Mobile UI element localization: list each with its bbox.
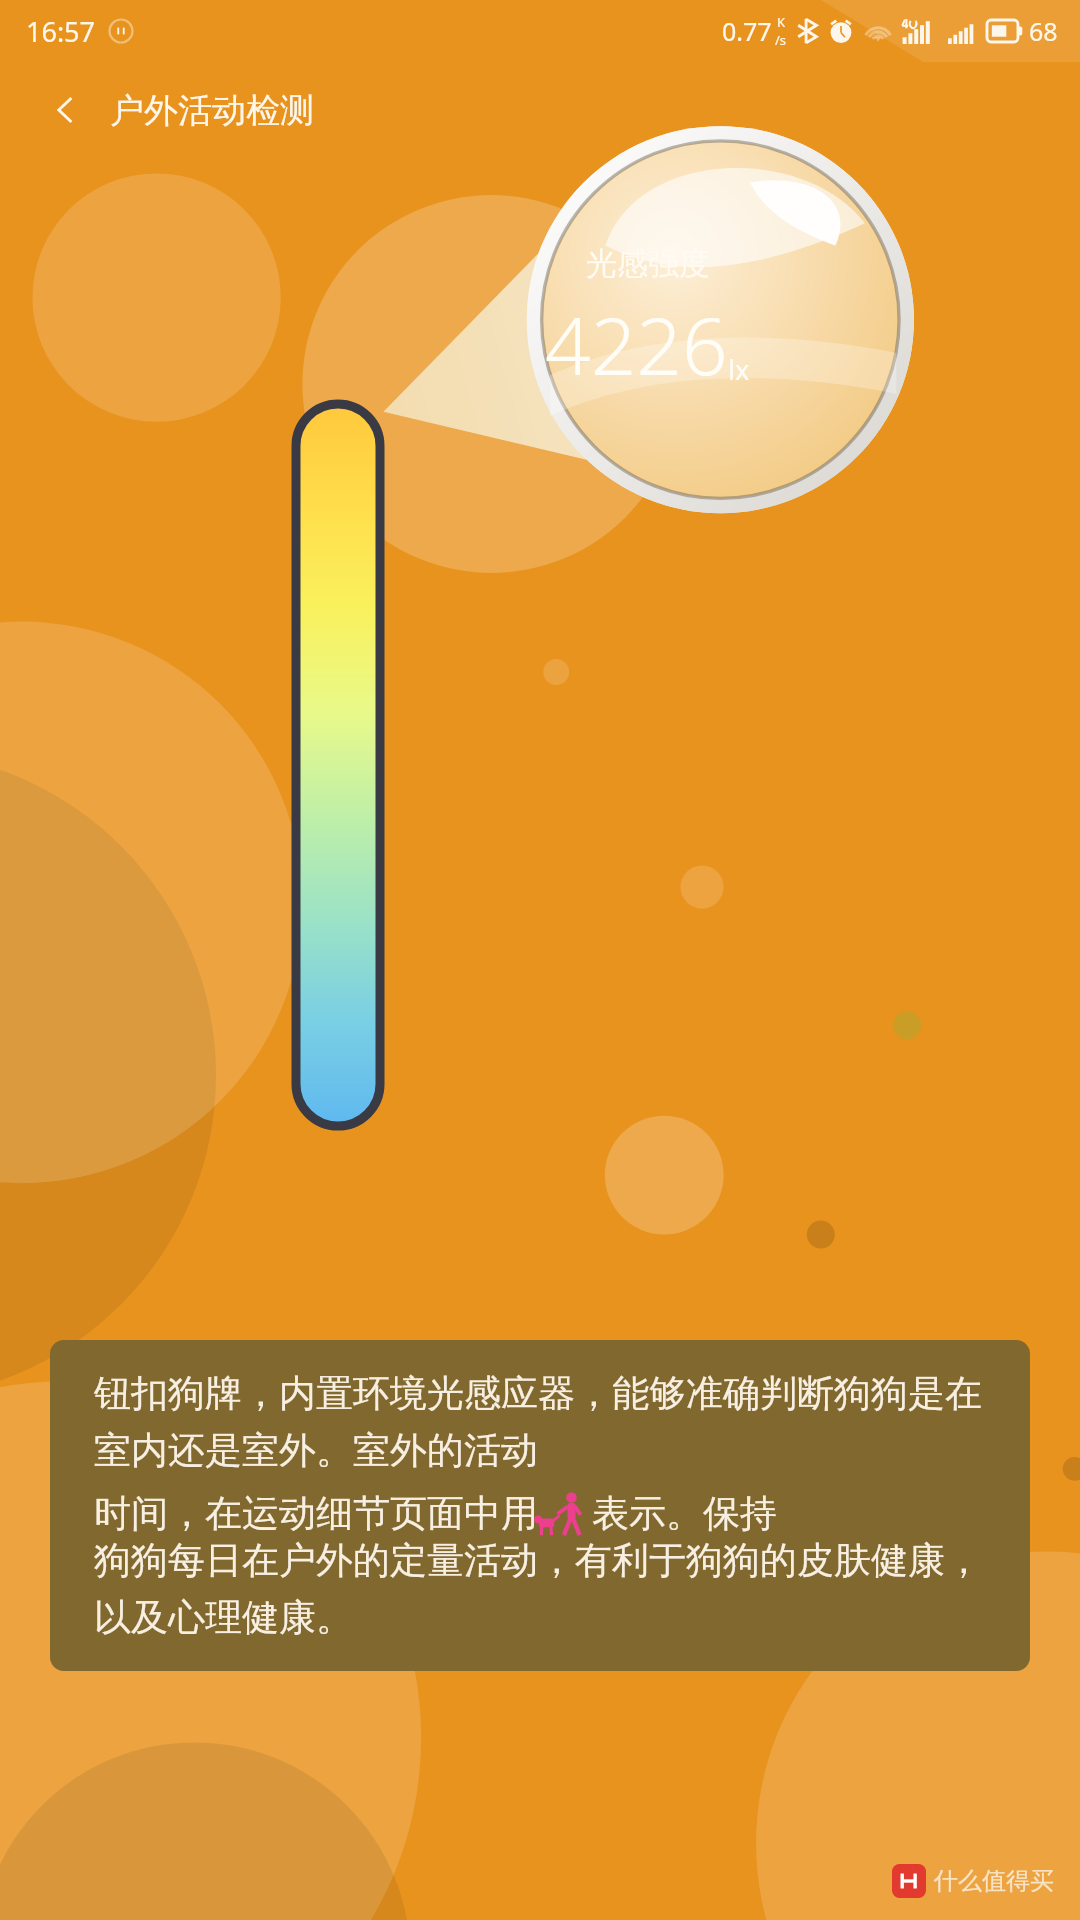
staticText: 68: [1029, 14, 1058, 48]
button[interactable]: [296, 404, 380, 1126]
staticText: 钮扣狗牌，内置环境光感应器，能够准确判断狗狗是在室内还是室外。室外的活动: [94, 1370, 986, 1474]
button[interactable]: 钮扣狗牌，内置环境光感应器，能够准确判断狗狗是在室内还是室外。室外的活动: [50, 1340, 1030, 1671]
button[interactable]: Back: [34, 78, 98, 142]
staticText: 16:57: [26, 13, 96, 50]
staticText: K: [777, 13, 786, 31]
staticText: 户外活动检测: [110, 89, 314, 132]
staticText: 4226: [545, 289, 728, 398]
staticText: 什么值得买: [934, 1866, 1054, 1896]
staticText: 狗狗每日在户外的定量活动，有利于狗狗的皮肤健康，以及心理健康。: [94, 1537, 986, 1641]
staticText: 光感强度: [586, 244, 710, 283]
staticText: 表示。保持: [592, 1490, 777, 1537]
staticText: /s: [775, 31, 787, 49]
staticText: 0.77: [722, 14, 772, 48]
staticText: lx: [728, 351, 750, 388]
staticText: 时间，在运动细节页面中用: [94, 1490, 538, 1537]
